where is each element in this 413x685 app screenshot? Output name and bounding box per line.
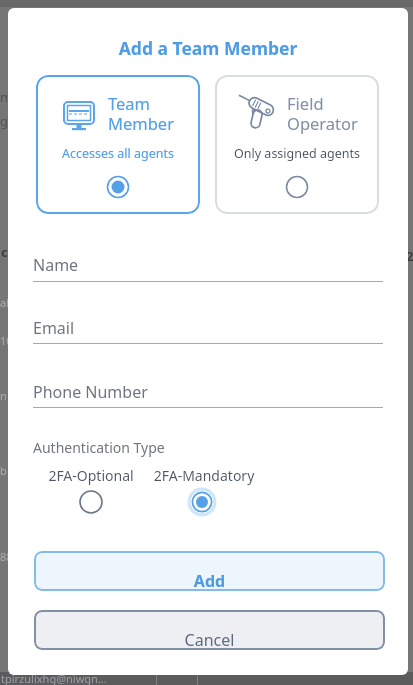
staticText: Add a Team Member bbox=[8, 36, 408, 60]
staticText: g bbox=[0, 112, 8, 130]
staticText: Phone Number bbox=[33, 381, 333, 403]
button[interactable]: Team Member bbox=[36, 75, 200, 214]
staticText: 88 bbox=[0, 549, 13, 564]
button[interactable]: Field Operator bbox=[215, 75, 379, 214]
staticText: tpirzulixhg@niwgn... bbox=[1, 671, 107, 685]
staticText: Email bbox=[33, 317, 333, 339]
staticText: Name bbox=[33, 254, 333, 276]
staticText: Field Operator bbox=[287, 92, 379, 135]
staticText: Cancel bbox=[34, 629, 385, 650]
button[interactable] bbox=[77, 488, 105, 516]
staticText: Only assigned agents bbox=[215, 145, 379, 162]
staticText: n bbox=[0, 388, 7, 403]
staticText: Team Member bbox=[108, 92, 200, 135]
button[interactable]: Add bbox=[34, 551, 385, 591]
staticText: c bbox=[1, 243, 8, 261]
staticText: 10 bbox=[0, 333, 13, 348]
button[interactable] bbox=[188, 488, 216, 516]
button[interactable]: Name bbox=[33, 250, 383, 283]
staticText: Add bbox=[34, 570, 385, 591]
staticText: 2FA-Mandatory bbox=[144, 466, 264, 485]
staticText: Accesses all agents bbox=[36, 145, 200, 162]
staticText: m bbox=[0, 88, 13, 106]
button[interactable]: Email bbox=[33, 313, 383, 345]
staticText: 2 bbox=[406, 247, 413, 265]
staticText: al bbox=[0, 295, 10, 310]
button[interactable]: Cancel bbox=[34, 610, 385, 650]
staticText: Authentication Type bbox=[33, 438, 333, 457]
staticText: 2FA-Optional bbox=[31, 466, 151, 485]
button[interactable]: Phone Number bbox=[33, 377, 383, 409]
staticText: b bbox=[0, 463, 7, 478]
